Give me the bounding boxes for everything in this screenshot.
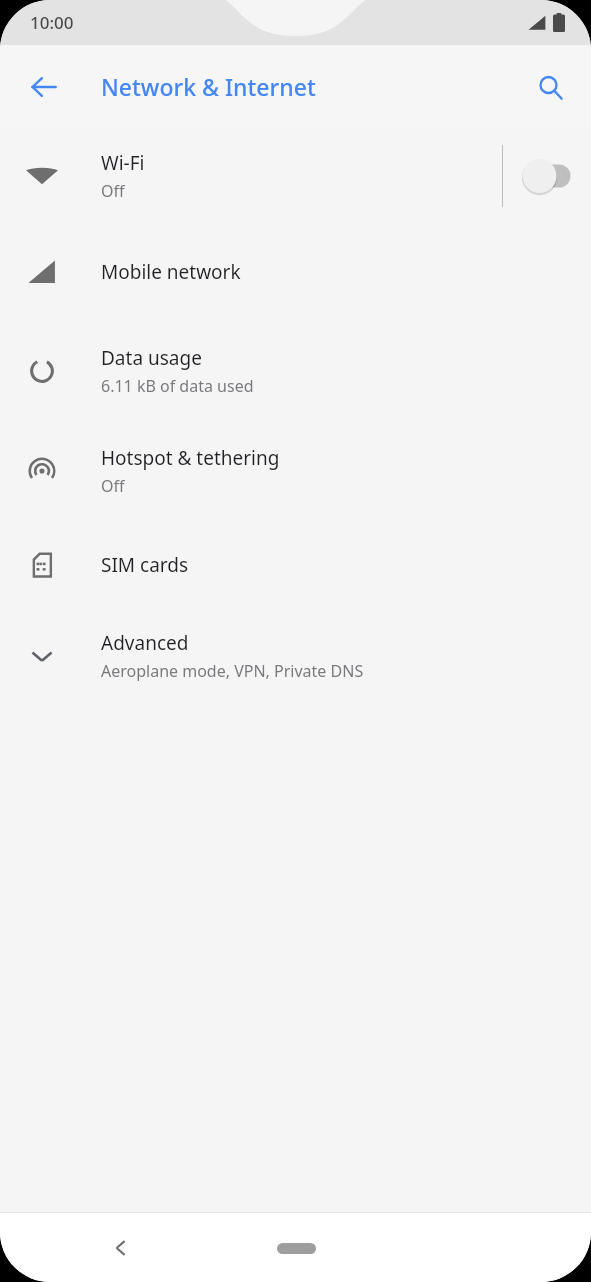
button[interactable]: Wi-Fi toggle [503, 145, 591, 207]
staticText: Mobile network [101, 259, 241, 285]
button[interactable]: Hotspot & tethering [0, 422, 591, 519]
staticText: Data usage [101, 345, 202, 371]
button[interactable]: Back [16, 59, 72, 115]
button[interactable]: SIM cards [0, 519, 591, 611]
button[interactable]: Advanced [0, 611, 591, 701]
staticText: Network & Internet [101, 71, 316, 102]
staticText: 6.11 kB of data used [101, 375, 254, 397]
button[interactable]: Wi-Fi [0, 128, 591, 224]
button[interactable]: Search [523, 60, 577, 114]
staticText: 10:00 [30, 11, 74, 34]
staticText: SIM cards [101, 552, 189, 578]
button[interactable]: Home [257, 1228, 335, 1268]
staticText: Wi-Fi [101, 150, 145, 176]
staticText: Hotspot & tethering [101, 445, 280, 471]
button[interactable]: Data usage [0, 320, 591, 422]
button[interactable]: Mobile network [0, 224, 591, 320]
staticText: Off [101, 180, 125, 202]
button[interactable]: Back [96, 1223, 146, 1273]
staticText: Aeroplane mode, VPN, Private DNS [101, 660, 364, 682]
staticText: Advanced [101, 630, 189, 656]
staticText: Off [101, 475, 125, 497]
